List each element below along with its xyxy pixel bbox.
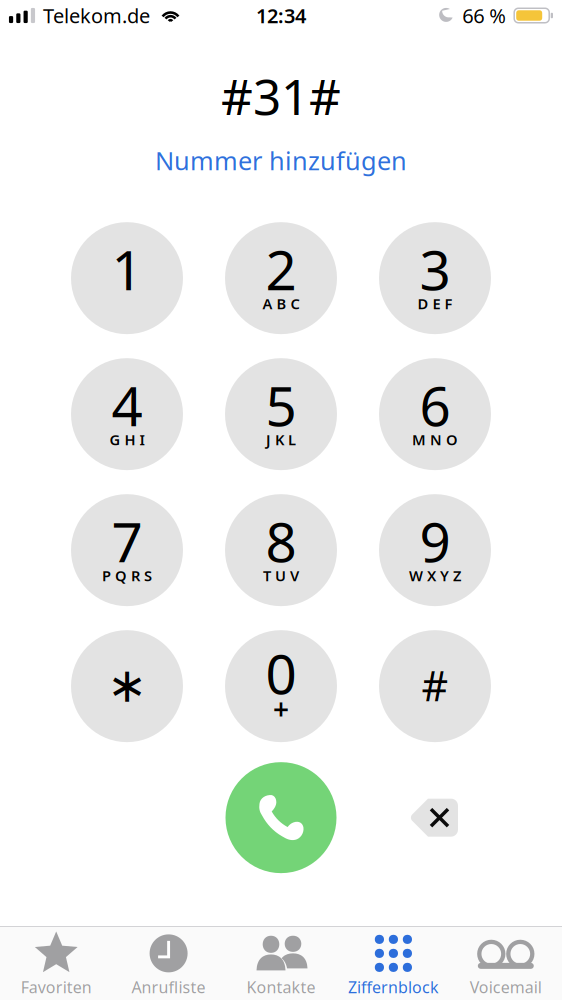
staticText: Voicemail [470,976,542,998]
staticText: 1 [111,233,142,305]
staticText: 8 [265,505,296,577]
button[interactable]: Favoriten [0,923,112,1000]
staticText: # [421,658,448,713]
button[interactable]: Voicemail [450,923,562,1000]
button[interactable]: 5 [225,358,337,470]
staticText: A B C [262,294,299,313]
staticText: 2 [265,233,296,305]
staticText: Ziffernblock [348,976,439,998]
staticText: Favoriten [21,976,92,998]
button[interactable]: Anrufliste [112,923,225,1000]
staticText: Anrufliste [132,976,206,998]
button[interactable]: 7 [71,494,183,606]
staticText: Kontakte [246,976,315,998]
staticText: T U V [263,566,299,585]
button[interactable]: Nummer hinzufügen [141,128,421,183]
button[interactable]: Ziffernblock [337,923,450,1000]
staticText: 9 [419,505,450,577]
staticText: 66 % [462,2,506,29]
staticText: 6 [419,369,450,441]
staticText: 4 [111,369,142,441]
button[interactable]: 2 [225,222,337,334]
staticText: D E F [417,294,452,313]
staticText: 5 [265,369,296,441]
staticText: 12:34 [256,2,306,29]
staticText: Telekom.de [43,2,150,29]
button[interactable]: 4 [71,358,183,470]
staticText: J K L [266,430,296,449]
staticText: 0 [265,637,296,709]
button[interactable]: 0 [225,630,337,742]
button[interactable]: ∗ [71,630,183,742]
button[interactable]: 6 [379,358,491,470]
staticText: P Q R S [102,566,152,585]
staticText: 3 [419,233,450,305]
button[interactable]: Löschen [402,787,464,849]
staticText: G H I [109,430,144,449]
staticText: M N O [412,430,458,449]
button[interactable]: Anrufen [225,762,336,873]
staticText: W X Y Z [409,566,461,585]
button[interactable]: 9 [379,494,491,606]
staticText: ∗ [107,658,147,712]
button[interactable]: Kontakte [225,923,337,1000]
staticText: Nummer hinzufügen [155,143,407,177]
button[interactable]: 3 [379,222,491,334]
staticText: 7 [111,505,142,577]
button[interactable]: # [379,630,491,742]
button[interactable]: 1 [71,222,183,334]
button[interactable]: 8 [225,494,337,606]
staticText: + [273,690,289,727]
staticText: #31# [221,63,341,128]
